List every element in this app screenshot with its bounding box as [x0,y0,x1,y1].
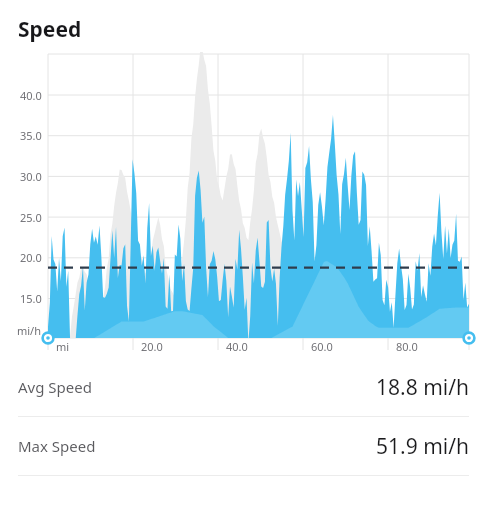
staticText: Max Speed [18,436,96,456]
button[interactable]: Avg Speed [0,358,487,416]
staticText: 18.8 mi/h [376,373,469,402]
staticText: Avg Speed [18,377,92,397]
staticText: Speed [18,15,82,44]
staticText: 51.9 mi/h [376,432,469,461]
button[interactable]: Max Speed [0,417,487,475]
button[interactable] [0,44,487,358]
